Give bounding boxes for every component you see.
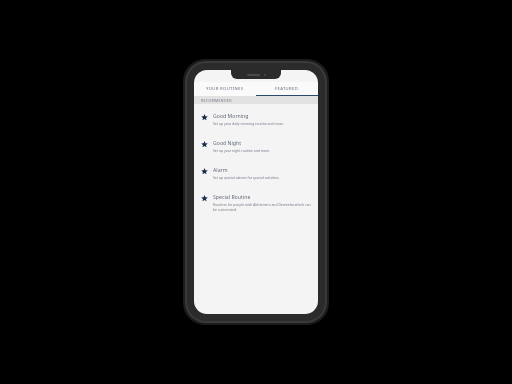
staticText: YOUR ROUTINES — [206, 86, 244, 92]
button[interactable]: Good Morning — [194, 107, 318, 131]
staticText: Set up your daily morning routine and mo… — [213, 121, 284, 126]
staticText: RECOMMENDED — [201, 98, 233, 103]
staticText: Alarm — [213, 166, 228, 173]
button[interactable]: YOUR ROUTINES — [194, 82, 256, 96]
button[interactable]: Alarm — [194, 161, 318, 185]
staticText: Special Routine — [213, 193, 251, 200]
button[interactable]: FEATURED — [256, 82, 318, 96]
staticText: FEATURED — [275, 86, 299, 92]
staticText: Set up special alarms for special activi… — [213, 175, 280, 180]
staticText: Good Morning — [213, 112, 249, 119]
staticText: Good Night — [213, 139, 242, 146]
staticText: Routines for people with Alzheimers and … — [213, 202, 312, 212]
staticText: Set up your night routine and more. — [213, 148, 271, 153]
button[interactable]: Good Night — [194, 134, 318, 158]
button[interactable]: Special Routine — [194, 188, 318, 217]
